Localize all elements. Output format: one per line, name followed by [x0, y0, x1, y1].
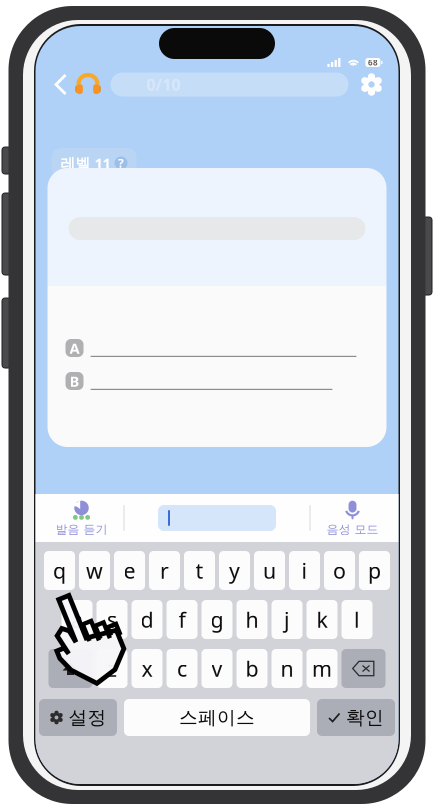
- staticText: 68: [368, 57, 378, 68]
- button[interactable]: Back: [46, 69, 74, 99]
- staticText: f: [178, 605, 185, 634]
- button[interactable]: t: [184, 551, 215, 590]
- button[interactable]: 0/10: [110, 72, 348, 96]
- staticText: x: [141, 654, 152, 683]
- button[interactable]: c: [166, 649, 197, 688]
- button[interactable]: 확인: [317, 699, 395, 736]
- button[interactable]: h: [236, 600, 267, 639]
- button[interactable]: d: [131, 600, 162, 639]
- button[interactable]: o: [324, 551, 355, 590]
- staticText: g: [210, 605, 223, 634]
- button[interactable]: s: [96, 600, 127, 639]
- button[interactable]: f: [166, 600, 197, 639]
- button[interactable]: 발음 듣기: [39, 495, 123, 541]
- staticText: v: [211, 654, 222, 683]
- staticText: 설정: [68, 706, 106, 729]
- button[interactable]: v: [201, 649, 232, 688]
- staticText: 0/10: [146, 74, 180, 95]
- staticText: w: [86, 556, 103, 585]
- staticText: d: [140, 605, 153, 634]
- button[interactable]: z: [96, 649, 127, 688]
- button[interactable]: l: [341, 600, 372, 639]
- button[interactable]: b: [236, 649, 267, 688]
- staticText: u: [263, 556, 276, 585]
- button[interactable]: 레벨 11: [51, 148, 136, 178]
- staticText: r: [160, 556, 169, 585]
- button[interactable]: k: [306, 600, 337, 639]
- staticText: 음성 모드: [326, 522, 378, 537]
- button[interactable]: 설정: [39, 699, 117, 736]
- button[interactable]: 스페이스: [124, 699, 310, 736]
- button[interactable]: a: [61, 600, 92, 639]
- staticText: h: [245, 605, 258, 634]
- button[interactable]: u: [254, 551, 285, 590]
- staticText: i: [301, 556, 307, 585]
- staticText: c: [177, 654, 187, 683]
- button[interactable]: 음성 모드: [310, 495, 394, 541]
- staticText: o: [333, 556, 346, 585]
- staticText: B: [69, 371, 79, 391]
- button[interactable]: q: [44, 551, 75, 590]
- button[interactable]: y: [219, 551, 250, 590]
- staticText: t: [195, 556, 203, 585]
- staticText: z: [107, 654, 117, 683]
- staticText: k: [316, 605, 327, 634]
- staticText: ?: [118, 155, 124, 171]
- button[interactable]: Backspace: [341, 649, 385, 688]
- button[interactable]: w: [79, 551, 110, 590]
- staticText: A: [69, 338, 79, 358]
- staticText: m: [312, 654, 332, 683]
- staticText: a: [71, 605, 83, 634]
- button[interactable]: Settings: [357, 69, 385, 99]
- button[interactable]: m: [306, 649, 337, 688]
- staticText: q: [53, 556, 66, 585]
- staticText: 발음 듣기: [55, 522, 107, 537]
- staticText: s: [107, 605, 117, 634]
- button[interactable]: x: [131, 649, 162, 688]
- staticText: 확인: [346, 706, 384, 729]
- staticText: 레벨 11: [60, 153, 110, 173]
- staticText: b: [245, 654, 258, 683]
- staticText: p: [368, 556, 381, 585]
- staticText: e: [123, 556, 135, 585]
- staticText: j: [284, 605, 290, 634]
- staticText: 스페이스: [179, 706, 255, 729]
- button[interactable]: p: [359, 551, 390, 590]
- button[interactable]: e: [114, 551, 145, 590]
- staticText: n: [280, 654, 293, 683]
- button[interactable]: [158, 505, 276, 531]
- button[interactable]: n: [271, 649, 302, 688]
- staticText: l: [354, 605, 360, 634]
- button[interactable]: i: [289, 551, 320, 590]
- button[interactable]: r: [149, 551, 180, 590]
- staticText: y: [229, 556, 240, 585]
- button[interactable]: g: [201, 600, 232, 639]
- button[interactable]: Shift: [48, 649, 92, 688]
- button[interactable]: j: [271, 600, 302, 639]
